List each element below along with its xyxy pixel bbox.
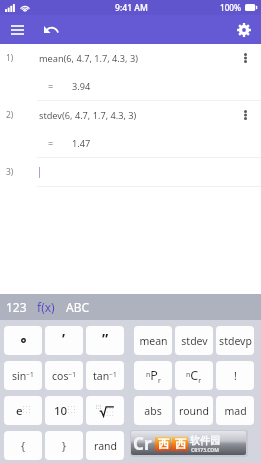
staticText: } <box>62 439 66 453</box>
staticText: e <box>16 403 23 419</box>
button[interactable]: 3) <box>0 158 261 187</box>
staticText: stdev(6, 4.7, 1.7, 4.3, 3) <box>39 109 137 122</box>
button[interactable]: More options <box>230 101 261 129</box>
button[interactable]: nCr <box>175 361 213 390</box>
button[interactable]: 1) <box>0 44 261 101</box>
staticText: ” <box>102 329 109 348</box>
staticText: mean(6, 4.7, 1.7, 4.3, 3) <box>39 52 138 65</box>
staticText: stdev <box>181 334 208 348</box>
staticText: rand <box>94 439 117 453</box>
staticText: stdevp <box>219 334 252 348</box>
button[interactable]: rand <box>86 431 124 460</box>
staticText: round <box>179 404 209 418</box>
staticText: 9:41 AM <box>115 2 148 14</box>
button[interactable]: ” <box>86 326 124 355</box>
staticText: 1.47 <box>72 137 91 150</box>
staticText: nCr <box>186 367 202 385</box>
button[interactable] <box>86 396 124 425</box>
staticText: tan−1 <box>93 369 117 383</box>
staticText: ! <box>234 369 237 383</box>
staticText: 西 <box>175 437 186 451</box>
button[interactable]: Navigation menu <box>0 15 35 44</box>
button[interactable]: } <box>45 431 83 460</box>
staticText: 3) <box>6 166 14 178</box>
button[interactable]: f(x) <box>32 294 60 320</box>
staticText: 123 <box>6 299 27 315</box>
staticText: 100% <box>220 2 242 13</box>
button[interactable]: stdevp <box>216 326 254 355</box>
button[interactable]: tan−1 <box>86 361 124 390</box>
staticText: sin−1 <box>12 369 34 383</box>
staticText: 1) <box>6 52 14 64</box>
button[interactable]: mad <box>216 396 254 425</box>
staticText: = <box>48 80 54 93</box>
button[interactable]: { <box>4 431 42 460</box>
staticText: 3.94 <box>72 80 91 93</box>
staticText: f(x) <box>37 299 55 315</box>
staticText: mad <box>224 404 247 418</box>
button[interactable]: More options <box>230 44 261 72</box>
button[interactable]: Settings <box>227 15 261 44</box>
staticText: 软件园 <box>190 434 220 447</box>
staticText: abs <box>144 404 162 418</box>
button[interactable]: 10 <box>45 396 83 425</box>
button[interactable]: e <box>4 396 42 425</box>
button[interactable]: mean <box>134 326 172 355</box>
button[interactable]: cos−1 <box>45 361 83 390</box>
button[interactable]: ABC <box>60 294 96 320</box>
staticText: mean <box>139 334 168 348</box>
staticText: cos−1 <box>52 369 76 383</box>
button[interactable] <box>4 326 42 355</box>
button[interactable]: Undo <box>35 15 68 44</box>
staticText: ABC <box>66 299 90 315</box>
staticText: 2) <box>6 109 14 121</box>
button[interactable]: stdev <box>175 326 213 355</box>
staticText: Cr <box>133 432 152 455</box>
button[interactable]: 2) <box>0 101 261 158</box>
button[interactable]: round <box>175 396 213 425</box>
staticText: 10 <box>54 403 68 419</box>
staticText: ’ <box>62 329 66 348</box>
staticText: CR173.COM <box>191 447 220 454</box>
staticText: 西 <box>158 437 169 451</box>
button[interactable]: abs <box>134 396 172 425</box>
button[interactable]: sin−1 <box>4 361 42 390</box>
button[interactable]: ! <box>216 361 254 390</box>
button[interactable]: 123 <box>0 294 32 320</box>
button[interactable]: nPr <box>134 361 172 390</box>
button[interactable]: ’ <box>45 326 83 355</box>
staticText: { <box>21 439 25 453</box>
staticText: nPr <box>146 367 161 385</box>
staticText: = <box>48 137 54 150</box>
